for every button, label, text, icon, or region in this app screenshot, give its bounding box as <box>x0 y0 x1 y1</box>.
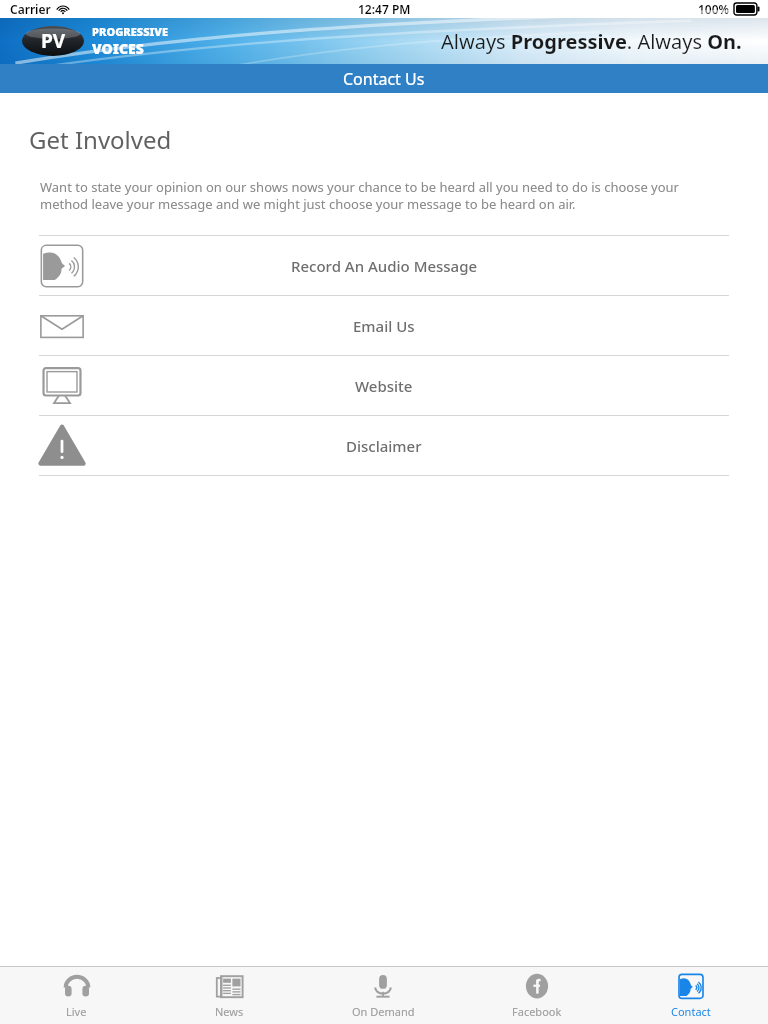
staticText: Facebook <box>512 1004 562 1019</box>
staticText: Contact Us <box>343 68 425 90</box>
staticText: News <box>215 1004 244 1019</box>
staticText: Always Progressive. Always On. <box>441 28 742 55</box>
button[interactable]: On Demand <box>306 967 460 1024</box>
button[interactable]: Facebook <box>460 967 614 1024</box>
button[interactable]: News <box>153 967 306 1024</box>
staticText: 100% <box>698 1 730 17</box>
staticText: Get Involved <box>29 123 172 156</box>
staticText: Want to state your opinion on our shows … <box>40 178 728 213</box>
staticText: Email Us <box>353 316 415 336</box>
staticText: On Demand <box>352 1004 415 1019</box>
button[interactable]: Email Us <box>0 296 768 355</box>
button[interactable]: Disclaimer <box>0 416 768 475</box>
staticText: 12:47 PM <box>358 1 411 17</box>
staticText: Carrier <box>10 1 51 17</box>
staticText: Record An Audio Message <box>291 256 478 276</box>
button[interactable]: Live <box>0 967 153 1024</box>
staticText: Website <box>355 376 413 396</box>
button[interactable]: Contact <box>614 967 768 1024</box>
button[interactable]: Record An Audio Message <box>0 236 768 295</box>
button[interactable]: Website <box>0 356 768 415</box>
staticText: Disclaimer <box>346 436 422 456</box>
staticText: PROGRESSIVE <box>92 24 168 39</box>
staticText: Contact <box>671 1004 711 1019</box>
staticText: VOICES <box>92 39 144 58</box>
staticText: Live <box>66 1004 87 1019</box>
staticText: PV <box>41 28 66 54</box>
